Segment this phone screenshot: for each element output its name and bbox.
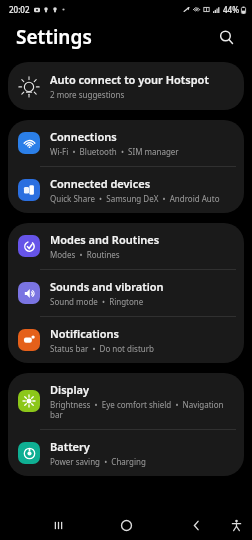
button[interactable]: Connections — [8, 120, 244, 166]
button[interactable]: Recent apps — [43, 510, 73, 540]
button[interactable]: Sounds and vibration — [8, 270, 244, 316]
staticText: Wi-Fi • Bluetooth • SIM manager — [50, 146, 179, 157]
staticText: Sounds and vibration — [50, 279, 164, 294]
staticText: Notifications — [50, 326, 120, 341]
staticText: Quick Share • Samsung DeX • Android Auto — [50, 193, 220, 204]
staticText: Settings — [16, 24, 92, 50]
staticText: Modes and Routines — [50, 232, 160, 247]
staticText: Connections — [50, 129, 117, 144]
staticText: Modes • Routines — [50, 249, 120, 260]
button[interactable]: Back — [181, 510, 211, 540]
button[interactable]: Home — [111, 510, 141, 540]
staticText: 2 more suggestions — [50, 89, 125, 100]
button[interactable]: Modes and Routines — [8, 223, 244, 269]
staticText: Battery — [50, 439, 90, 454]
staticText: 20:02 — [9, 4, 30, 15]
button[interactable]: Display — [8, 373, 244, 429]
staticText: Status bar • Do not disturb — [50, 343, 154, 354]
staticText: Sound mode • Ringtone — [50, 296, 144, 307]
button[interactable]: Accessibility — [221, 510, 251, 540]
button[interactable]: Battery — [8, 430, 244, 476]
staticText: Brightness • Eye comfort shield • Naviga… — [50, 399, 236, 420]
button[interactable]: Auto connect to your Hotspot — [8, 62, 244, 110]
staticText: Connected devices — [50, 176, 151, 191]
staticText: Power saving • Charging — [50, 456, 146, 467]
staticText: Auto connect to your Hotspot — [50, 72, 209, 87]
staticText: Display — [50, 382, 90, 397]
button[interactable]: Notifications — [8, 317, 244, 363]
staticText: 44% — [223, 4, 239, 15]
button[interactable]: Connected devices — [8, 167, 244, 213]
button[interactable]: Search settings — [212, 23, 240, 51]
